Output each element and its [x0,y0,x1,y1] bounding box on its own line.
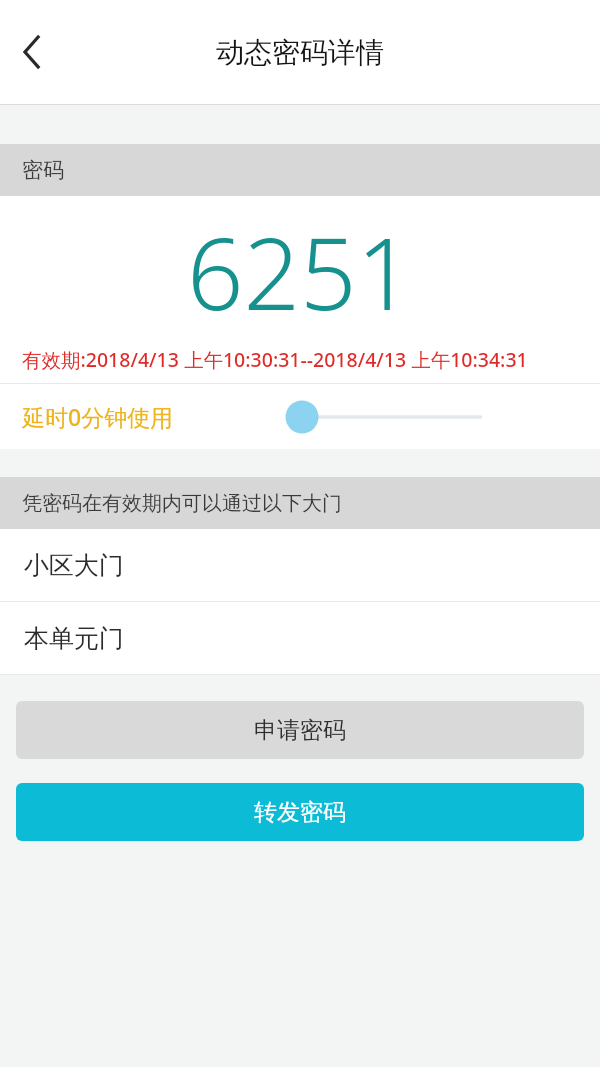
staticText: 延时0分钟使用 [22,401,174,432]
staticText: 本单元门 [24,623,124,654]
button[interactable]: 本单元门 [0,602,600,674]
staticText: 动态密码详情 [216,35,384,70]
staticText: 凭密码在有效期内可以通过以下大门 [22,491,342,516]
staticText: 密码 [22,157,64,183]
button[interactable]: 申请密码 [16,701,584,759]
staticText: 小区大门 [24,550,124,581]
button[interactable]: Back [0,0,64,104]
button[interactable]: 转发密码 [16,783,584,841]
staticText: 申请密码 [254,716,346,745]
staticText: 有效期:2018/4/13 上午10:30:31--2018/4/13 上午10… [22,346,528,373]
staticText: 6251 [187,204,414,339]
button[interactable]: 小区大门 [0,529,600,601]
staticText: 转发密码 [254,798,346,827]
button[interactable]: Delay slider [284,393,524,441]
